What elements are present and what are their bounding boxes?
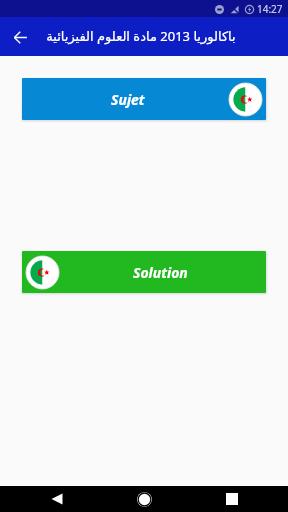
staticText: Solution	[133, 263, 188, 282]
button[interactable]: Sujet	[22, 78, 266, 120]
staticText: باكالوريا 2013 مادة العلوم الفيزيائية	[46, 27, 236, 45]
button[interactable]: Solution	[22, 251, 266, 293]
button[interactable]: Back	[43, 486, 70, 512]
button[interactable]: Back	[6, 23, 34, 51]
button[interactable]: Home	[131, 486, 158, 512]
button[interactable]: Recent apps	[218, 486, 245, 512]
staticText: Sujet	[111, 90, 145, 109]
staticText: 14:27	[257, 2, 283, 16]
